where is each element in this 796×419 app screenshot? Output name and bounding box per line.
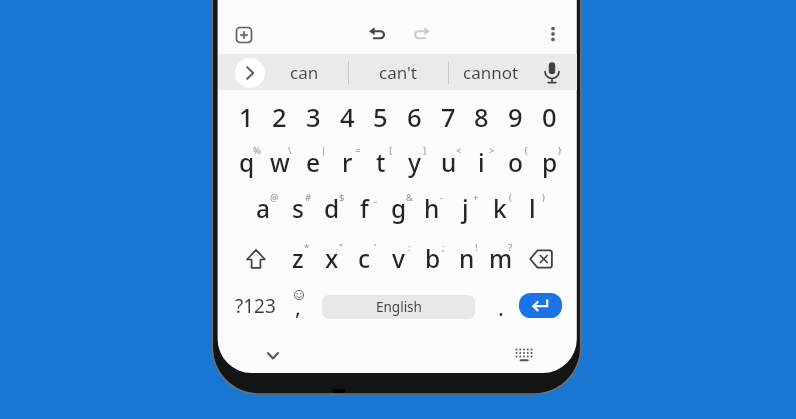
staticText: w bbox=[270, 146, 290, 179]
button[interactable]: u bbox=[432, 141, 465, 183]
staticText: 7 bbox=[441, 100, 456, 135]
button[interactable]: can bbox=[264, 55, 344, 89]
button[interactable]: e bbox=[297, 141, 330, 183]
staticText: ( bbox=[509, 191, 512, 204]
staticText: 1 bbox=[239, 100, 254, 135]
button[interactable]: m bbox=[484, 237, 517, 279]
button[interactable] bbox=[235, 58, 265, 88]
staticText: e bbox=[306, 146, 321, 179]
button[interactable]: f bbox=[348, 187, 381, 229]
staticText: u bbox=[441, 146, 457, 179]
button[interactable]: k bbox=[483, 187, 516, 229]
staticText: * bbox=[304, 241, 310, 254]
button[interactable]: 1 bbox=[230, 96, 263, 138]
button[interactable] bbox=[519, 293, 562, 318]
staticText: + bbox=[473, 191, 479, 204]
button[interactable]: r bbox=[331, 141, 364, 183]
staticText: # bbox=[305, 191, 312, 204]
staticText: = bbox=[355, 144, 361, 157]
button[interactable]: j bbox=[449, 187, 482, 229]
staticText: 9 bbox=[508, 100, 523, 135]
button[interactable]: d bbox=[315, 187, 348, 229]
button[interactable]: 8 bbox=[465, 96, 498, 138]
button[interactable]: q bbox=[230, 141, 263, 183]
staticText: , bbox=[295, 291, 301, 321]
button[interactable]: p bbox=[533, 141, 566, 183]
button[interactable]: l bbox=[516, 187, 549, 229]
button[interactable]: 2 bbox=[263, 96, 296, 138]
staticText: [ bbox=[389, 144, 393, 157]
button[interactable]: 4 bbox=[331, 96, 364, 138]
staticText: z bbox=[292, 242, 304, 275]
button[interactable]: o bbox=[499, 141, 532, 183]
staticText: 4 bbox=[340, 100, 355, 135]
button[interactable]: s bbox=[281, 187, 314, 229]
staticText: f bbox=[360, 192, 369, 225]
staticText: $ bbox=[339, 191, 345, 204]
button[interactable]: 5 bbox=[364, 96, 397, 138]
button[interactable]: g bbox=[382, 187, 415, 229]
staticText: : bbox=[408, 241, 411, 254]
staticText: o bbox=[508, 146, 523, 179]
button[interactable]: i bbox=[465, 141, 498, 183]
button[interactable] bbox=[543, 21, 563, 47]
staticText: . bbox=[498, 292, 504, 322]
staticText: 3 bbox=[306, 100, 321, 135]
staticText: ! bbox=[475, 241, 478, 254]
button[interactable]: n bbox=[450, 237, 483, 279]
button[interactable]: 9 bbox=[499, 96, 532, 138]
staticText: i bbox=[478, 146, 485, 179]
button[interactable]: z bbox=[281, 237, 314, 279]
button[interactable]: ?123 bbox=[227, 288, 283, 324]
button[interactable]: t bbox=[364, 141, 397, 183]
staticText: 0 bbox=[542, 100, 557, 135]
staticText: > bbox=[489, 144, 495, 157]
staticText: can't bbox=[379, 61, 417, 84]
button[interactable]: w bbox=[263, 141, 296, 183]
button[interactable] bbox=[408, 22, 434, 48]
staticText: 6 bbox=[407, 100, 422, 135]
staticText: < bbox=[456, 144, 462, 157]
button[interactable]: a bbox=[247, 187, 280, 229]
staticText: 2 bbox=[272, 100, 287, 135]
button[interactable]: c bbox=[348, 237, 381, 279]
button[interactable]: 7 bbox=[432, 96, 465, 138]
button[interactable] bbox=[239, 242, 273, 276]
staticText: j bbox=[462, 192, 469, 225]
button[interactable] bbox=[511, 345, 537, 365]
staticText: & bbox=[406, 191, 413, 204]
button[interactable]: , bbox=[286, 286, 310, 326]
button[interactable] bbox=[537, 58, 567, 88]
staticText: p bbox=[542, 146, 558, 179]
staticText: h bbox=[424, 192, 440, 225]
button[interactable]: x bbox=[315, 237, 348, 279]
staticText: n bbox=[459, 242, 475, 275]
button[interactable]: y bbox=[398, 141, 431, 183]
staticText: 5 bbox=[373, 100, 388, 135]
button[interactable]: 0 bbox=[533, 96, 566, 138]
button[interactable]: can't bbox=[358, 55, 438, 89]
button[interactable] bbox=[260, 346, 286, 366]
button[interactable]: v bbox=[382, 237, 415, 279]
button[interactable] bbox=[523, 244, 559, 274]
button[interactable]: 6 bbox=[398, 96, 431, 138]
button[interactable]: b bbox=[416, 237, 449, 279]
staticText: \ bbox=[288, 144, 292, 157]
button[interactable]: . bbox=[489, 287, 513, 327]
button[interactable]: cannot bbox=[449, 55, 533, 89]
button[interactable] bbox=[231, 22, 257, 48]
staticText: ' bbox=[374, 241, 377, 254]
staticText: s bbox=[292, 192, 304, 225]
button[interactable]: English bbox=[322, 295, 475, 319]
staticText: a bbox=[256, 192, 271, 225]
button[interactable] bbox=[365, 22, 391, 48]
staticText: | bbox=[321, 144, 327, 157]
button[interactable]: 3 bbox=[297, 96, 330, 138]
staticText: English bbox=[376, 298, 422, 316]
staticText: v bbox=[392, 242, 405, 275]
staticText: ; bbox=[442, 241, 445, 254]
button[interactable]: h bbox=[415, 187, 448, 229]
staticText: } bbox=[558, 144, 562, 157]
staticText: % bbox=[253, 144, 261, 157]
staticText: - bbox=[440, 191, 444, 204]
